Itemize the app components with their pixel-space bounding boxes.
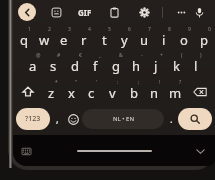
staticText: c <box>88 84 95 102</box>
button[interactable]: Settings <box>136 4 152 20</box>
staticText: 1 <box>28 26 31 33</box>
staticText: 6 <box>128 26 131 33</box>
button[interactable]: Backspace <box>186 78 214 105</box>
staticText: _ <box>99 52 102 59</box>
staticText: 9 <box>188 26 191 33</box>
staticText: a <box>29 57 37 75</box>
staticText: , <box>56 112 59 126</box>
button[interactable]: 7 <box>134 25 154 51</box>
staticText: ! <box>159 79 161 86</box>
staticText: h <box>132 57 141 75</box>
staticText: l <box>194 57 198 75</box>
staticText: : <box>117 79 119 86</box>
staticText: 7 <box>148 26 151 33</box>
staticText: k <box>173 57 180 75</box>
button[interactable]: € <box>64 51 85 78</box>
staticText: 5 <box>108 26 111 33</box>
button[interactable]: & <box>106 51 126 78</box>
button[interactable]: ; <box>123 78 144 105</box>
button[interactable]: , <box>50 107 64 131</box>
button[interactable]: " <box>61 78 81 105</box>
button[interactable]: NL • EN <box>82 109 164 129</box>
staticText: ' <box>96 79 98 86</box>
staticText: ) <box>200 52 202 59</box>
staticText: € <box>79 52 82 59</box>
button[interactable]: Back <box>18 3 36 21</box>
staticText: 2 <box>48 26 51 33</box>
staticText: r <box>81 31 87 49</box>
staticText: j <box>154 57 158 75</box>
button[interactable]: 9 <box>174 25 194 51</box>
button[interactable]: 2 <box>34 25 54 51</box>
staticText: ; <box>138 79 140 86</box>
staticText: 3 <box>68 26 71 33</box>
staticText: ( <box>181 52 183 59</box>
staticText: f <box>93 57 98 75</box>
staticText: ?123 <box>25 114 41 124</box>
button[interactable]: 4 <box>74 25 94 51</box>
button[interactable]: Clipboard <box>106 4 122 20</box>
button[interactable]: * <box>41 78 61 105</box>
staticText: 4 <box>88 26 91 33</box>
staticText: t <box>102 31 107 49</box>
button[interactable]: ? <box>165 78 186 105</box>
staticText: # <box>57 52 61 59</box>
button[interactable]: ' <box>81 78 102 105</box>
staticText: n <box>150 84 159 102</box>
button[interactable]: ! <box>144 78 165 105</box>
staticText: z <box>48 84 55 102</box>
button[interactable]: More options <box>173 4 189 20</box>
staticText: d <box>71 57 79 75</box>
staticText: g <box>112 57 120 75</box>
staticText: @ <box>36 52 41 59</box>
button[interactable]: Shift <box>14 78 41 105</box>
button[interactable]: 0 <box>194 25 214 51</box>
button[interactable]: . <box>164 107 178 131</box>
staticText: w <box>39 31 50 49</box>
button[interactable]: 8 <box>154 25 174 51</box>
button[interactable]: - <box>126 51 146 78</box>
staticText: u <box>140 31 149 49</box>
staticText: x <box>68 84 75 102</box>
staticText: p <box>200 31 208 49</box>
staticText: m <box>169 84 182 102</box>
staticText: e <box>60 31 68 49</box>
staticText: * <box>55 79 58 86</box>
button[interactable]: @ <box>22 51 43 78</box>
button[interactable]: ( <box>166 51 186 78</box>
button[interactable]: 1 <box>14 25 34 51</box>
staticText: y <box>121 31 128 49</box>
button[interactable]: : <box>102 78 123 105</box>
button[interactable]: ) <box>186 51 206 78</box>
staticText: 0 <box>208 26 211 33</box>
button[interactable]: Stickers <box>48 4 64 20</box>
button[interactable]: Search <box>178 108 212 130</box>
button[interactable]: + <box>146 51 166 78</box>
button[interactable]: Emoji <box>64 107 82 131</box>
staticText: v <box>109 84 116 102</box>
staticText: b <box>130 84 138 102</box>
staticText: + <box>160 52 163 59</box>
button[interactable]: Voice input <box>191 4 207 20</box>
button[interactable]: 3 <box>54 25 74 51</box>
button[interactable]: # <box>43 51 64 78</box>
button[interactable]: 5 <box>94 25 114 51</box>
button[interactable]: _ <box>85 51 106 78</box>
staticText: o <box>180 31 188 49</box>
staticText: s <box>50 57 57 75</box>
button[interactable]: Collapse <box>193 144 207 158</box>
staticText: . <box>170 112 173 126</box>
staticText: q <box>20 31 28 49</box>
staticText: NL • EN <box>113 115 134 123</box>
staticText: " <box>75 79 78 86</box>
staticText: ? <box>179 79 182 86</box>
staticText: GIF <box>78 7 92 18</box>
button[interactable]: Hide keyboard <box>19 144 33 158</box>
staticText: - <box>141 52 143 59</box>
button[interactable]: 6 <box>114 25 134 51</box>
button[interactable]: GIF <box>76 7 94 18</box>
staticText: i <box>162 31 166 49</box>
staticText: & <box>119 52 123 59</box>
button[interactable]: ?123 <box>16 108 50 130</box>
staticText: 8 <box>168 26 171 33</box>
